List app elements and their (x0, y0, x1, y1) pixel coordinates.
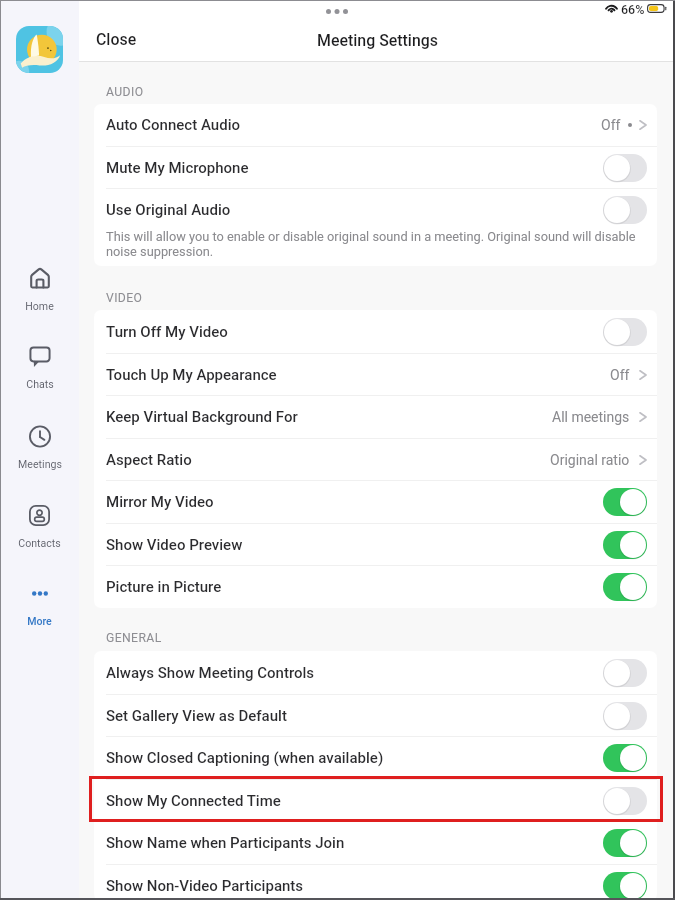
staticText: Turn Off My Video (106, 323, 228, 341)
button[interactable]: Show Non-Video Participants (94, 864, 657, 900)
button[interactable]: Show My Connected Time (94, 779, 657, 822)
staticText: Set Gallery View as Default (106, 707, 287, 725)
button[interactable]: Off (603, 702, 647, 730)
staticText: Mirror My Video (106, 493, 214, 511)
staticText: Meetings (18, 458, 62, 470)
button[interactable]: On (603, 531, 647, 559)
button[interactable]: Meetings (0, 420, 79, 476)
staticText: Show Video Preview (106, 536, 243, 554)
staticText: AUDIO (106, 85, 144, 99)
staticText: Auto Connect Audio (106, 116, 241, 134)
staticText: Picture in Picture (106, 578, 222, 596)
staticText: Meeting Settings (317, 31, 438, 50)
button[interactable]: Aspect Ratio (94, 438, 657, 481)
button[interactable]: Chats (0, 340, 79, 396)
staticText: Original ratio (550, 452, 630, 468)
button[interactable]: Mirror My Video (94, 480, 657, 523)
button[interactable]: Mute My Microphone (94, 146, 657, 189)
button[interactable]: Turn Off My Video (94, 310, 657, 353)
button[interactable]: On (603, 744, 647, 772)
staticText: Aspect Ratio (106, 451, 192, 469)
button[interactable]: Picture in Picture (94, 565, 657, 608)
staticText: More (27, 615, 52, 627)
staticText: Off (610, 367, 630, 383)
button[interactable]: Set Gallery View as Default (94, 694, 657, 737)
staticText: VIDEO (106, 291, 143, 305)
button[interactable]: Show Name when Participants Join (94, 821, 657, 864)
staticText: All meetings (552, 409, 630, 425)
button[interactable]: Off (603, 318, 647, 346)
button[interactable]: Home (0, 261, 79, 318)
staticText: Home (25, 300, 54, 312)
button[interactable]: Off (603, 154, 647, 182)
button[interactable]: More (0, 585, 79, 633)
button[interactable]: Contacts (0, 499, 79, 555)
staticText: 66% (621, 2, 645, 17)
button[interactable]: On (603, 573, 647, 601)
button[interactable]: Profile (16, 26, 63, 73)
button[interactable]: Keep Virtual Background For (94, 395, 657, 438)
button[interactable]: On (603, 829, 647, 857)
button[interactable]: Off (603, 196, 647, 224)
button[interactable]: On (603, 488, 647, 516)
button[interactable]: Touch Up My Appearance (94, 353, 657, 396)
button[interactable]: Off (603, 659, 647, 687)
staticText: Show Non-Video Participants (106, 877, 304, 895)
staticText: Show Closed Captioning (when available) (106, 749, 384, 767)
staticText: Use Original Audio (106, 201, 231, 219)
staticText: Contacts (18, 537, 61, 549)
button[interactable]: Always Show Meeting Controls (94, 651, 657, 694)
staticText: Touch Up My Appearance (106, 366, 277, 384)
staticText: Chats (26, 378, 54, 390)
button[interactable]: Show Video Preview (94, 523, 657, 566)
button[interactable]: Show Closed Captioning (when available) (94, 736, 657, 779)
button[interactable]: Off (603, 787, 647, 815)
staticText: Show Name when Participants Join (106, 834, 345, 852)
staticText: Show My Connected Time (106, 792, 281, 810)
button[interactable]: Auto Connect Audio (94, 104, 657, 146)
button[interactable]: On (603, 872, 647, 900)
staticText: This will allow you to enable or disable… (106, 229, 639, 259)
staticText: GENERAL (106, 631, 162, 645)
staticText: Close (96, 30, 137, 49)
staticText: Off (601, 117, 621, 133)
staticText: Mute My Microphone (106, 159, 249, 177)
button[interactable]: Use Original Audio (94, 188, 657, 231)
staticText: Keep Virtual Background For (106, 408, 298, 426)
button[interactable]: Close (83, 26, 150, 53)
staticText: Always Show Meeting Controls (106, 664, 315, 682)
